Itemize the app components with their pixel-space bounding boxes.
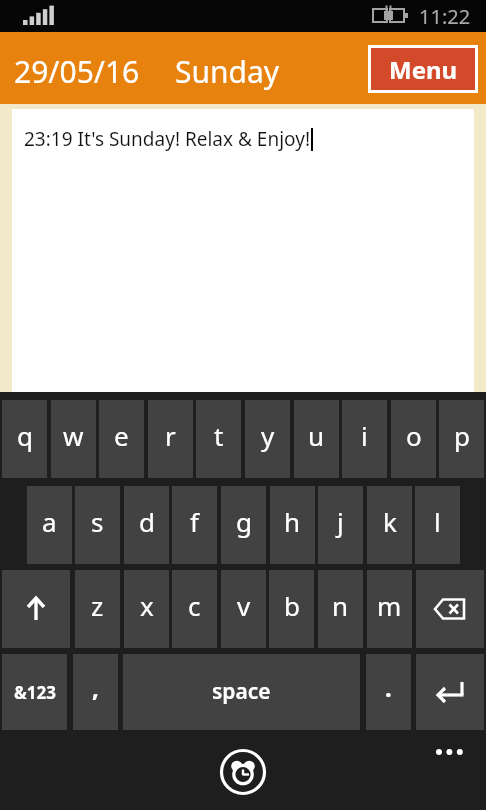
staticText: p (454, 418, 470, 453)
button[interactable]: v (221, 570, 266, 648)
staticText: a (42, 504, 57, 539)
button[interactable]: o (391, 400, 436, 478)
staticText: k (383, 504, 397, 539)
button[interactable]: c (172, 570, 217, 648)
button[interactable]: y (245, 400, 290, 478)
staticText: Sunday (175, 51, 280, 92)
button[interactable]: f (172, 486, 217, 564)
button[interactable]: space (123, 654, 360, 732)
staticText: . (385, 671, 392, 704)
button[interactable]: r (148, 400, 193, 478)
button[interactable]: . (366, 654, 411, 732)
button[interactable] (416, 570, 484, 648)
button[interactable]: w (51, 400, 96, 478)
button[interactable]: l (415, 486, 460, 564)
button[interactable] (416, 654, 484, 732)
staticText: i (361, 418, 368, 453)
staticText: h (284, 504, 301, 539)
staticText: z (91, 588, 104, 623)
staticText: e (114, 418, 129, 453)
staticText: &123 (14, 681, 56, 704)
staticText: r (165, 418, 176, 453)
button[interactable]: g (221, 486, 266, 564)
button[interactable]: x (124, 570, 169, 648)
staticText: b (284, 588, 300, 623)
button[interactable]: s (75, 486, 120, 564)
button[interactable] (220, 749, 266, 795)
staticText: m (377, 588, 402, 623)
staticText: t (214, 418, 224, 453)
button[interactable]: &123 (2, 654, 67, 732)
staticText: 29/05/16 (14, 51, 140, 92)
staticText: 23:19 It's Sunday! Relax & Enjoy! (24, 126, 310, 152)
button[interactable]: h (270, 486, 315, 564)
staticText: v (237, 588, 251, 623)
button[interactable]: n (318, 570, 363, 648)
staticText: s (91, 504, 104, 539)
staticText: , (92, 671, 99, 704)
button[interactable]: a (27, 486, 72, 564)
button[interactable]: z (75, 570, 120, 648)
staticText: j (337, 504, 344, 539)
button[interactable]: t (196, 400, 241, 478)
staticText: Menu (389, 53, 458, 86)
button[interactable] (2, 570, 70, 648)
staticText: w (63, 418, 84, 453)
staticText: 11:22 (419, 3, 471, 30)
staticText: f (190, 504, 199, 539)
button[interactable] (426, 736, 470, 768)
staticText: space (212, 677, 271, 706)
staticText: o (406, 418, 422, 453)
button[interactable]: b (269, 570, 314, 648)
staticText: d (139, 504, 155, 539)
button[interactable]: 23:19 It's Sunday! Relax & Enjoy! (12, 109, 474, 392)
button[interactable]: p (439, 400, 484, 478)
button[interactable]: u (294, 400, 339, 478)
button[interactable]: k (367, 486, 412, 564)
button[interactable]: , (73, 654, 118, 732)
staticText: c (188, 588, 201, 623)
staticText: q (17, 418, 33, 453)
staticText: l (434, 504, 441, 539)
button[interactable]: j (318, 486, 363, 564)
staticText: u (308, 418, 325, 453)
staticText: y (261, 418, 275, 453)
button[interactable]: m (367, 570, 412, 648)
button[interactable]: Menu (368, 45, 478, 93)
button[interactable]: d (124, 486, 169, 564)
button[interactable]: q (2, 400, 47, 478)
button[interactable]: e (99, 400, 144, 478)
button[interactable]: i (342, 400, 387, 478)
staticText: g (236, 504, 252, 539)
staticText: n (332, 588, 349, 623)
staticText: x (140, 588, 154, 623)
